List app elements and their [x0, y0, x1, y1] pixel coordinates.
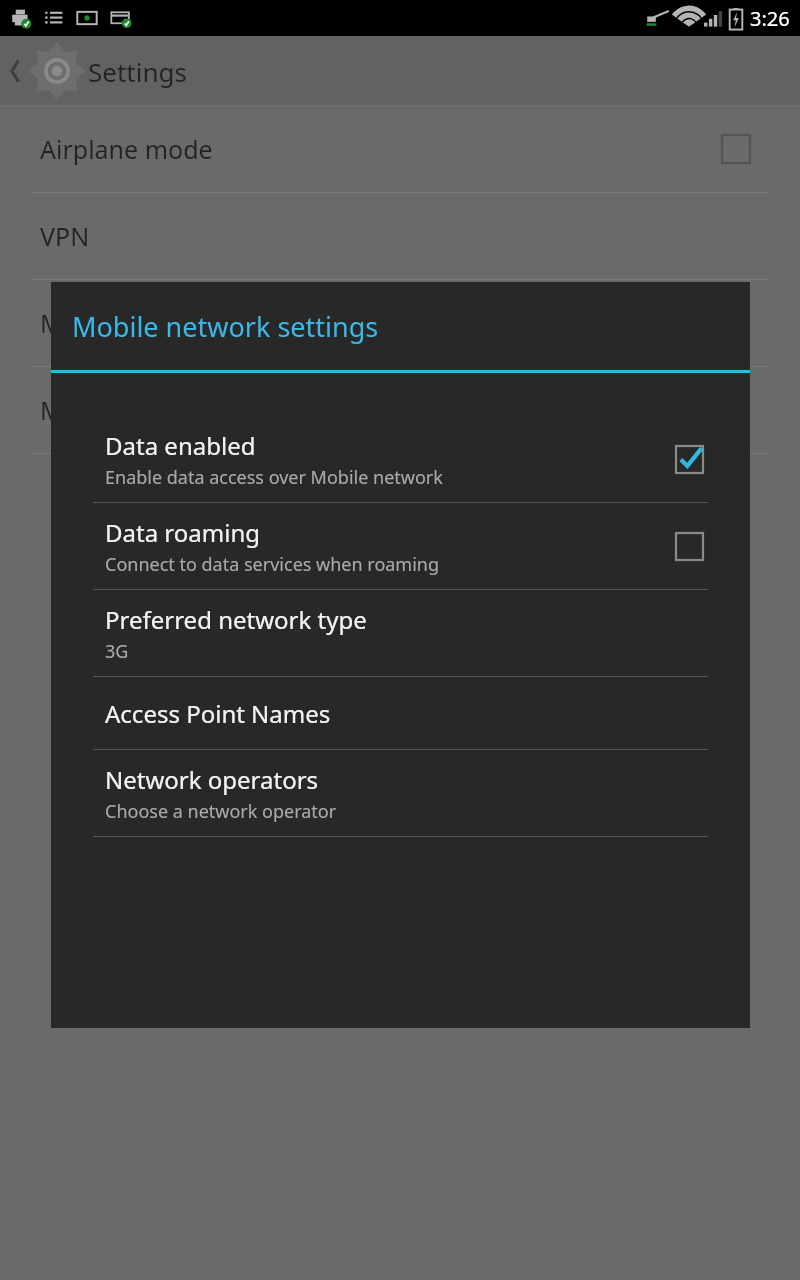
staticText: Choose a network operator — [105, 799, 337, 824]
button[interactable]: Navigate up — [0, 40, 96, 102]
staticText: Preferred network type — [105, 603, 367, 636]
button[interactable]: Preferred network type — [51, 590, 750, 676]
button[interactable]: More... — [0, 367, 800, 453]
staticText: Network operators — [105, 763, 319, 796]
button[interactable]: Mobile networks — [0, 280, 800, 366]
button[interactable]: Access Point Names — [51, 677, 750, 749]
staticText: Mobile network settings — [72, 308, 379, 345]
button[interactable]: VPN — [0, 193, 800, 279]
button[interactable]: Network operators — [51, 750, 750, 836]
staticText: Connect to data services when roaming — [105, 552, 440, 577]
staticText: Data roaming — [105, 516, 260, 549]
staticText: More... — [40, 393, 122, 427]
button[interactable]: Airplane mode — [0, 106, 800, 192]
staticText: Settings — [88, 54, 187, 89]
staticText: Data enabled — [105, 429, 256, 462]
button[interactable]: Data enabled — [51, 416, 750, 502]
staticText: Airplane mode — [40, 132, 213, 166]
staticText: 3G — [105, 639, 129, 664]
staticText: Enable data access over Mobile network — [105, 465, 443, 490]
staticText: VPN — [40, 219, 90, 253]
staticText: Access Point Names — [105, 697, 331, 730]
staticText: 3:26 — [750, 5, 790, 32]
button[interactable]: Data roaming — [51, 503, 750, 589]
staticText: Mobile networks — [40, 306, 236, 340]
